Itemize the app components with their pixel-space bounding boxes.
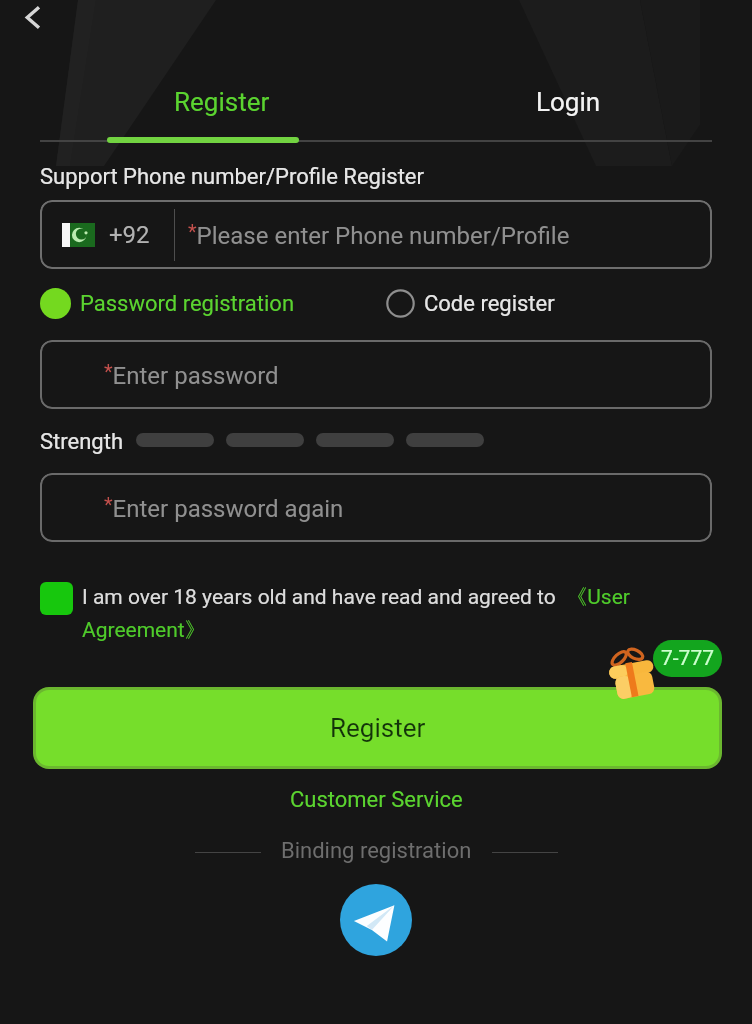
staticText: Strength <box>40 429 123 455</box>
button[interactable]: Password registration <box>40 288 295 319</box>
staticText: Code register <box>424 291 555 317</box>
staticText: I am over 18 years old and have read and… <box>82 584 680 643</box>
button[interactable]: Register <box>36 690 719 766</box>
button[interactable]: Code register <box>386 289 555 318</box>
staticText: *Enter password <box>104 360 279 390</box>
staticText: Support Phone number/Profile Register <box>40 164 424 190</box>
staticText: Binding registration <box>281 838 472 864</box>
staticText: Customer Service <box>290 787 463 813</box>
button[interactable]: Back <box>9 0 57 41</box>
staticText: Register <box>174 87 270 117</box>
staticText: 7-777 <box>661 646 715 671</box>
staticText: Login <box>536 87 601 117</box>
button[interactable]: Agree to terms <box>40 582 73 615</box>
staticText: *Enter password again <box>104 493 344 523</box>
button[interactable]: Login <box>400 72 736 132</box>
staticText: *Please enter Phone number/Profile <box>188 220 570 250</box>
button[interactable]: *Enter password again <box>40 473 712 542</box>
button[interactable]: *Enter password <box>40 340 712 409</box>
staticText: Register <box>330 713 426 743</box>
button[interactable]: Customer Service <box>276 783 476 817</box>
staticText: +92 <box>109 221 150 249</box>
button[interactable]: +92 <box>40 200 712 269</box>
button[interactable]: Register <box>54 72 390 132</box>
button[interactable]: Telegram <box>340 884 412 956</box>
staticText: Password registration <box>80 291 295 317</box>
